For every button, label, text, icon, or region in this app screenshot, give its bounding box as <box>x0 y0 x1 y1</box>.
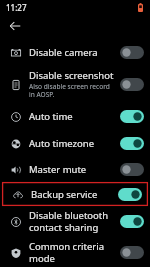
button[interactable]: Master mute <box>0 156 150 182</box>
staticText: Common criteria mode <box>29 240 117 264</box>
button[interactable]: On <box>120 137 144 150</box>
staticText: Auto timezone <box>29 137 95 150</box>
staticText: Backup service <box>31 188 98 201</box>
button[interactable]: On <box>120 110 144 123</box>
button[interactable]: Back <box>4 15 26 37</box>
button[interactable]: On <box>118 188 142 201</box>
button[interactable]: Common criteria mode <box>0 237 150 267</box>
staticText: Master mute <box>29 163 87 176</box>
button[interactable]: Off <box>120 78 144 91</box>
button[interactable]: Auto time <box>0 102 150 130</box>
button[interactable]: Disable screenshot <box>0 66 150 102</box>
button[interactable]: Auto timezone <box>0 130 150 156</box>
staticText: 11:27 <box>6 2 27 13</box>
button[interactable]: Off <box>120 246 144 259</box>
staticText: Disable bluetooth contact sharing <box>29 209 117 234</box>
button[interactable]: Off <box>120 46 144 59</box>
button[interactable]: On <box>120 215 144 228</box>
button[interactable]: Off <box>120 163 144 176</box>
button[interactable]: Backup service <box>2 182 148 206</box>
button[interactable]: Disable camera <box>0 38 150 66</box>
staticText: Also disable screen record in AOSP. <box>29 82 117 99</box>
button[interactable]: Disable bluetooth contact sharing <box>0 206 150 237</box>
staticText: Disable screenshot <box>29 69 114 82</box>
staticText: Auto time <box>29 110 73 123</box>
staticText: Disable camera <box>29 46 98 59</box>
